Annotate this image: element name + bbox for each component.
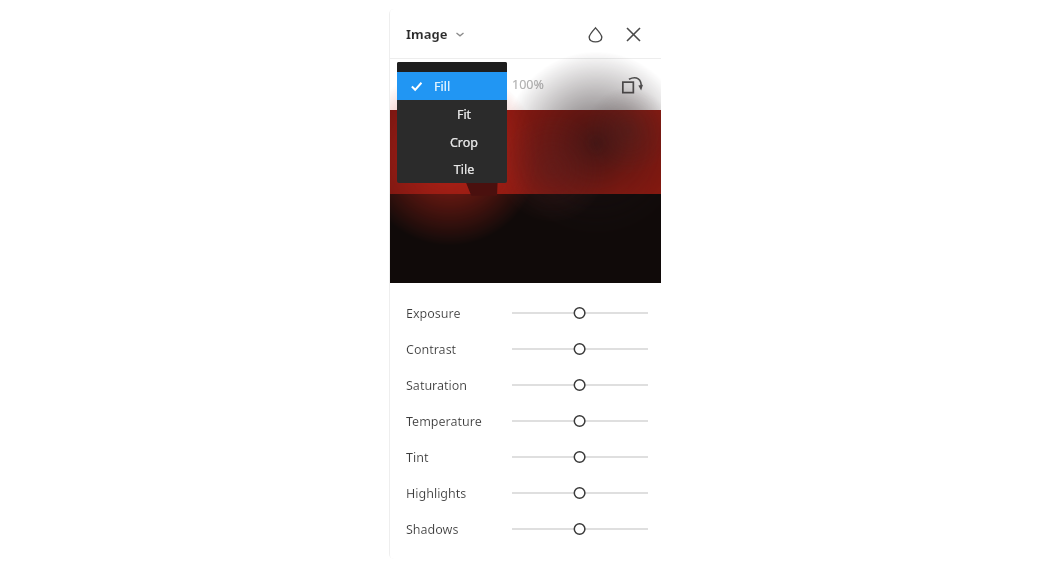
staticText: Highlights bbox=[406, 485, 467, 502]
button[interactable]: Contrast bbox=[390, 331, 661, 367]
button[interactable]: Exposure bbox=[390, 295, 661, 331]
staticText: Shadows bbox=[406, 521, 459, 538]
button[interactable]: Shadows bbox=[390, 511, 661, 547]
button[interactable]: Highlights bbox=[390, 475, 661, 511]
staticText: Saturation bbox=[406, 377, 468, 394]
staticText: Fit bbox=[434, 106, 494, 123]
button[interactable] bbox=[397, 65, 507, 105]
staticText: Fill bbox=[434, 78, 494, 95]
staticText: Tint bbox=[406, 449, 429, 466]
button[interactable]: Temperature bbox=[390, 403, 661, 439]
button[interactable]: Color bbox=[581, 20, 609, 48]
button[interactable]: Crop bbox=[397, 128, 507, 156]
button[interactable]: Image bbox=[406, 25, 465, 43]
button[interactable]: Fill bbox=[397, 72, 507, 100]
button[interactable]: Rotate bbox=[617, 70, 647, 100]
button[interactable]: Tint bbox=[390, 439, 661, 475]
button[interactable]: Close bbox=[619, 20, 647, 48]
staticText: Exposure bbox=[406, 305, 461, 322]
button[interactable]: 100% bbox=[512, 76, 544, 93]
staticText: Contrast bbox=[406, 341, 457, 358]
staticText: Tile bbox=[434, 161, 494, 178]
button[interactable]: Tile bbox=[397, 156, 507, 183]
staticText: Crop bbox=[434, 134, 494, 151]
staticText: Image bbox=[406, 25, 448, 43]
staticText: Temperature bbox=[406, 413, 482, 430]
button[interactable]: Saturation bbox=[390, 367, 661, 403]
button[interactable]: Fit bbox=[397, 100, 507, 128]
